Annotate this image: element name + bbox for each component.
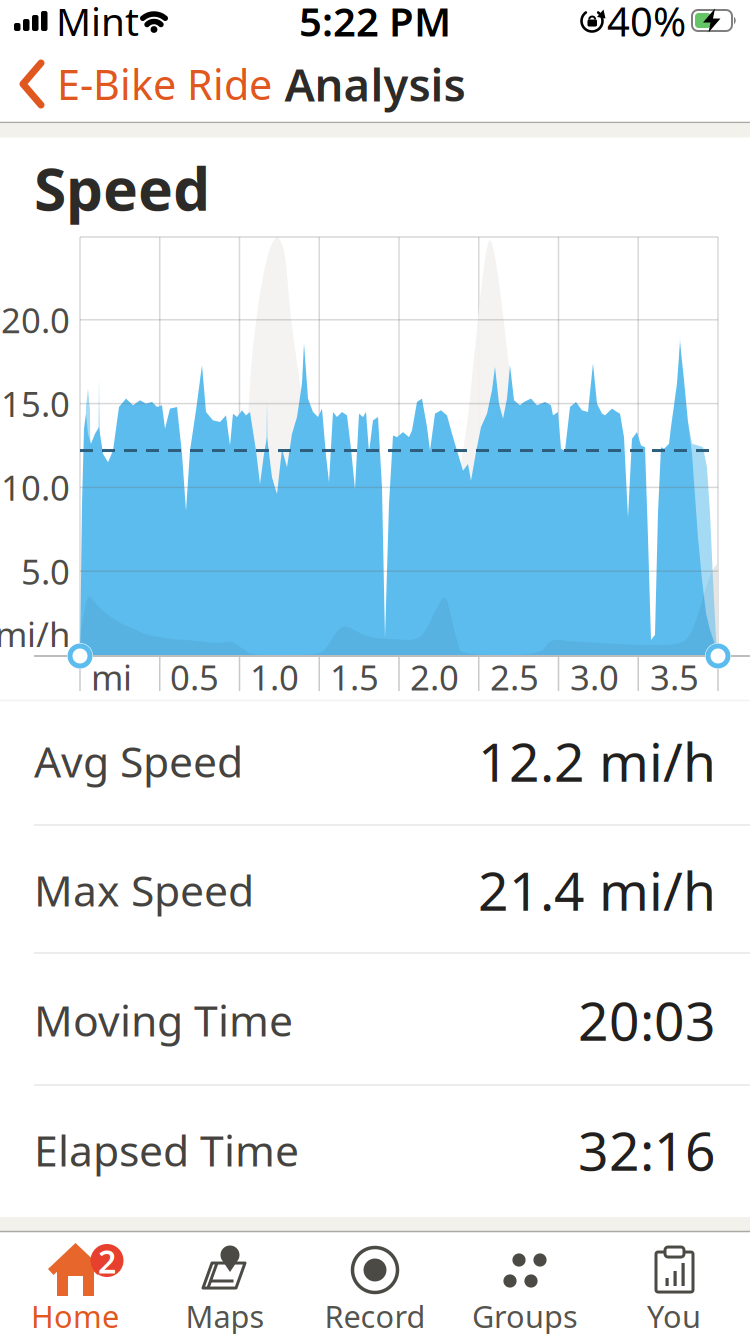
- staticText: 10.0: [1, 464, 70, 510]
- staticText: 3.0: [570, 654, 619, 700]
- staticText: Home: [31, 1296, 119, 1334]
- staticText: 2.5: [490, 654, 539, 700]
- staticText: Record: [324, 1296, 425, 1334]
- staticText: 15.0: [1, 381, 70, 427]
- staticText: Mint: [56, 0, 139, 47]
- staticText: 5:22 PM: [299, 0, 451, 47]
- staticText: Elapsed Time: [34, 1122, 299, 1178]
- staticText: 3.5: [650, 654, 699, 700]
- button[interactable]: Elapsed Time: [0, 1086, 750, 1214]
- button[interactable]: Avg Speed: [0, 697, 750, 825]
- button[interactable]: E-Bike Ride: [0, 44, 300, 124]
- staticText: Maps: [185, 1296, 264, 1334]
- button[interactable]: Record: [300, 1232, 450, 1334]
- staticText: Avg Speed: [34, 733, 243, 789]
- staticText: 20.0: [1, 297, 70, 343]
- staticText: mi/h: [0, 611, 70, 657]
- staticText: Speed: [34, 149, 210, 227]
- button[interactable]: 2: [0, 1232, 150, 1334]
- staticText: 2.0: [410, 654, 459, 700]
- staticText: 40%: [607, 0, 686, 47]
- button[interactable]: Maps: [150, 1232, 300, 1334]
- staticText: You: [647, 1296, 701, 1334]
- staticText: 12.2 mi/h: [478, 726, 716, 796]
- button[interactable]: You: [600, 1232, 750, 1334]
- staticText: Groups: [472, 1296, 578, 1334]
- staticText: 21.4 mi/h: [478, 855, 716, 925]
- staticText: 0.5: [170, 654, 219, 700]
- staticText: 5.0: [21, 548, 70, 594]
- staticText: Max Speed: [34, 862, 254, 918]
- staticText: 32:16: [578, 1115, 716, 1185]
- staticText: 20:03: [578, 985, 716, 1055]
- staticText: 1.5: [330, 654, 379, 700]
- staticText: 1.0: [250, 654, 299, 700]
- staticText: mi: [91, 654, 132, 700]
- staticText: Moving Time: [34, 992, 293, 1048]
- button[interactable]: Moving Time: [0, 956, 750, 1084]
- staticText: E-Bike Ride: [57, 57, 272, 111]
- button[interactable]: Groups: [450, 1232, 600, 1334]
- button[interactable]: Max Speed: [0, 826, 750, 954]
- staticText: 2: [98, 1240, 116, 1282]
- staticText: Analysis: [284, 54, 465, 114]
